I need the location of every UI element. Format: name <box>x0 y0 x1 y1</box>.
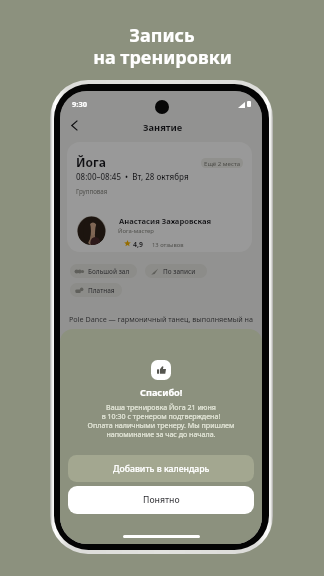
staticText: 13 отзывов <box>152 241 184 249</box>
staticText: Pole Dance — гармоничный танец, выполняе… <box>69 314 253 324</box>
staticText: Платная <box>88 286 115 295</box>
staticText: Большой зал <box>88 267 130 276</box>
staticText: По записи <box>163 267 196 276</box>
button[interactable]: Большой зал <box>70 264 137 278</box>
button[interactable]: Йога <box>67 142 252 252</box>
button[interactable]: Понятно <box>68 486 254 514</box>
staticText: Занятие <box>143 121 183 134</box>
staticText: Ещё 2 места <box>204 159 241 167</box>
staticText: 9:30 <box>72 99 87 109</box>
staticText: на тренировки <box>93 45 232 70</box>
button[interactable]: Платная <box>70 283 122 297</box>
staticText: Групповая <box>76 187 108 195</box>
staticText: Понятно <box>143 494 180 506</box>
staticText: Ваша тренировка Йога 21 июня в 10:30 с т… <box>60 402 262 439</box>
staticText: Запись <box>129 23 195 48</box>
staticText: Анастасия Захаровская <box>119 216 212 226</box>
staticText: Йога-мастер <box>118 227 154 235</box>
staticText: Спасибо! <box>140 386 183 399</box>
staticText: Добавить в календарь <box>113 463 210 475</box>
staticText: Йога <box>76 154 106 170</box>
staticText: 08:00–08:45 • Вт, 28 октября <box>76 171 189 182</box>
button[interactable]: Добавить в календарь <box>68 455 254 482</box>
button[interactable]: По записи <box>145 264 207 278</box>
button[interactable]: Back <box>64 115 84 135</box>
staticText: 4,9 <box>133 240 143 249</box>
